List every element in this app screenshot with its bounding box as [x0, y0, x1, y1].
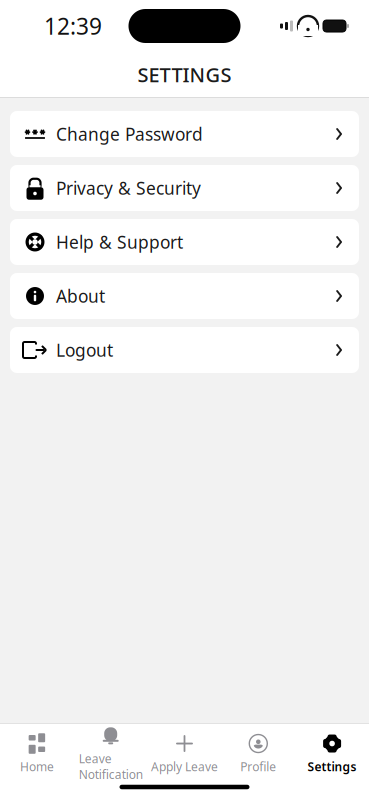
button[interactable]: About: [10, 273, 359, 319]
button[interactable]: Leave Notification: [74, 733, 148, 774]
button[interactable]: Profile: [221, 733, 295, 774]
staticText: Settings: [308, 758, 357, 774]
staticText: Privacy & Security: [56, 176, 201, 199]
button[interactable]: Logout: [10, 327, 359, 373]
staticText: 12:39: [44, 11, 102, 41]
staticText: Change Password: [56, 122, 203, 145]
button[interactable]: Privacy & Security: [10, 165, 359, 211]
staticText: Leave Notification: [79, 751, 143, 782]
staticText: Profile: [240, 758, 276, 774]
button[interactable]: Home: [0, 733, 74, 774]
staticText: About: [56, 284, 105, 307]
staticText: Help & Support: [56, 230, 183, 253]
staticText: SETTINGS: [137, 61, 231, 88]
staticText: Apply Leave: [151, 758, 218, 774]
staticText: Logout: [56, 338, 113, 361]
button[interactable]: Change Password: [10, 111, 359, 157]
button[interactable]: Apply Leave: [148, 733, 221, 774]
staticText: Home: [20, 758, 54, 774]
button[interactable]: Help & Support: [10, 219, 359, 265]
button[interactable]: Settings: [295, 733, 369, 774]
